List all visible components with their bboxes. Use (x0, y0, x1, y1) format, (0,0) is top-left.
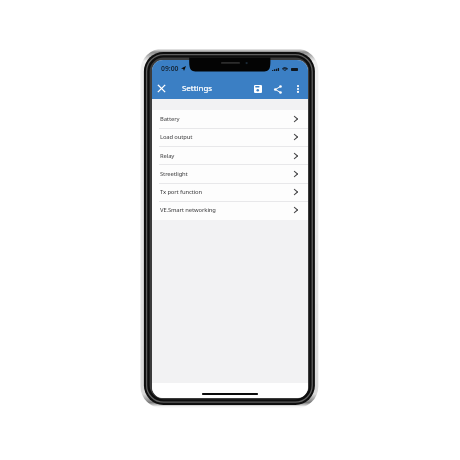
staticText: 09:00 (161, 64, 179, 73)
button[interactable]: Relay (152, 147, 308, 165)
button[interactable]: More options (290, 81, 306, 97)
button[interactable]: Save (250, 81, 266, 97)
button[interactable]: Battery (152, 110, 308, 128)
button[interactable]: Streetlight (152, 165, 308, 183)
button[interactable]: Load output (152, 128, 308, 146)
staticText: Streetlight (160, 170, 188, 178)
staticText: Tx port function (160, 188, 203, 196)
staticText: Relay (160, 152, 175, 160)
staticText: Settings (182, 83, 213, 94)
button[interactable]: VE.Smart networking (152, 201, 308, 219)
staticText: Battery (160, 115, 180, 123)
staticText: Load output (160, 133, 193, 141)
staticText: VE.Smart networking (160, 206, 216, 214)
button[interactable]: Share (270, 81, 286, 97)
button[interactable]: Tx port function (152, 183, 308, 201)
button[interactable]: Close (153, 80, 169, 96)
